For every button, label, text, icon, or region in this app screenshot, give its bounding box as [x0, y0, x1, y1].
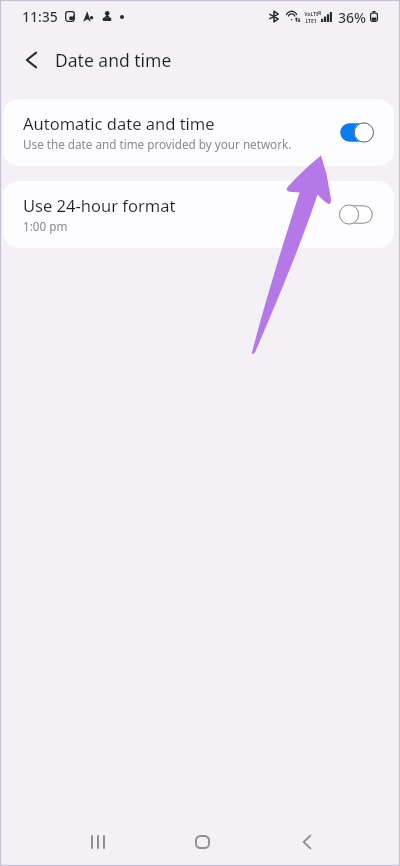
- staticText: 36%: [338, 8, 366, 27]
- staticText: VoLTE: [304, 11, 318, 18]
- button[interactable]: Automatic date and time: [3, 99, 394, 166]
- button[interactable]: Navigate up: [13, 42, 49, 78]
- staticText: R: [318, 10, 322, 17]
- staticText: 1:00 pm: [23, 218, 68, 234]
- button[interactable]: Switch off: [339, 204, 374, 225]
- button[interactable]: Switch on: [339, 122, 374, 143]
- button[interactable]: Use 24-hour format: [3, 181, 394, 248]
- staticText: Use the date and time provided by your n…: [23, 136, 292, 152]
- staticText: LTE1: [305, 18, 317, 25]
- staticText: Use 24-hour format: [23, 194, 176, 216]
- staticText: 11:35: [22, 7, 58, 26]
- button[interactable]: Home: [168, 825, 236, 859]
- button[interactable]: Back: [273, 825, 341, 859]
- staticText: Date and time: [55, 48, 172, 72]
- button[interactable]: Recent apps: [64, 825, 132, 859]
- staticText: Automatic date and time: [23, 112, 215, 134]
